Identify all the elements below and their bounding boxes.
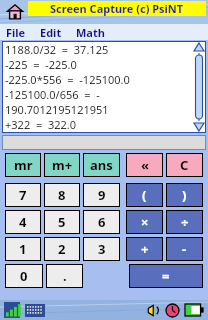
button[interactable]: Edit xyxy=(40,25,62,40)
staticText: 0 xyxy=(20,267,28,285)
staticText: 5 xyxy=(58,213,66,231)
button[interactable]: m+ xyxy=(44,153,80,177)
button[interactable]: . xyxy=(46,264,83,288)
button[interactable]: « xyxy=(126,153,163,177)
staticText: -125100.0/656 = - xyxy=(5,87,100,102)
staticText: File xyxy=(6,25,26,40)
button[interactable]: File xyxy=(6,25,26,40)
button[interactable]: Signal xyxy=(4,302,20,318)
button[interactable]: ( xyxy=(126,183,163,207)
button[interactable]: 8 xyxy=(44,183,80,207)
staticText: × xyxy=(141,213,149,231)
button[interactable]: C xyxy=(166,153,203,177)
staticText: Screen Capture (c) PsiNT xyxy=(50,1,184,16)
staticText: ( xyxy=(142,186,147,204)
staticText: ÷ xyxy=(181,213,189,231)
staticText: mr xyxy=(14,156,33,174)
staticText: - xyxy=(182,240,187,258)
staticText: 1 xyxy=(19,240,27,258)
button[interactable]: ) xyxy=(166,183,203,207)
staticText: . xyxy=(63,267,67,285)
button[interactable]: 2 xyxy=(44,237,80,261)
button[interactable]: 0 xyxy=(5,264,43,288)
button[interactable]: ans xyxy=(83,153,120,177)
staticText: « xyxy=(141,156,149,174)
staticText: ) xyxy=(182,186,187,204)
staticText: -225.0*556 = -125100.0 xyxy=(5,72,130,87)
staticText: +322 = 322.0 xyxy=(5,117,77,132)
staticText: -225 = -225.0 xyxy=(5,57,77,72)
staticText: = xyxy=(162,267,170,285)
button[interactable]: Math xyxy=(76,25,105,40)
button[interactable]: = xyxy=(129,264,203,288)
button[interactable]: Volume xyxy=(145,303,160,318)
button[interactable]: 1 xyxy=(5,237,41,261)
staticText: C xyxy=(180,156,189,174)
staticText: m+ xyxy=(52,156,73,174)
button[interactable] xyxy=(2,135,206,150)
button[interactable]: Keyboard xyxy=(25,304,45,317)
button[interactable]: 7 xyxy=(5,183,41,207)
staticText: ans xyxy=(90,156,113,174)
staticText: 4 xyxy=(19,213,27,231)
staticText: 7 xyxy=(19,186,27,204)
staticText: Math xyxy=(76,25,105,40)
staticText: Edit xyxy=(40,25,62,40)
button[interactable]: 6 xyxy=(83,210,120,234)
button[interactable]: 9 xyxy=(83,183,120,207)
button[interactable]: Home xyxy=(6,3,24,21)
staticText: 190.7012195121951 xyxy=(5,102,109,117)
button[interactable]: mr xyxy=(5,153,41,177)
staticText: + xyxy=(141,240,149,258)
button[interactable]: 4 xyxy=(5,210,41,234)
button[interactable]: Scroll xyxy=(192,41,206,133)
button[interactable]: Battery xyxy=(185,304,204,316)
staticText: 9 xyxy=(98,186,106,204)
button[interactable]: Clock xyxy=(165,303,180,318)
staticText: 8 xyxy=(58,186,66,204)
staticText: 2 xyxy=(58,240,66,258)
staticText: 3 xyxy=(98,240,106,258)
button[interactable]: - xyxy=(166,237,203,261)
staticText: 1188.0/32 = 37.125 xyxy=(5,42,109,57)
button[interactable]: 3 xyxy=(83,237,120,261)
button[interactable]: 5 xyxy=(44,210,80,234)
button[interactable]: ÷ xyxy=(166,210,203,234)
staticText: 6 xyxy=(98,213,106,231)
button[interactable]: × xyxy=(126,210,163,234)
button[interactable]: + xyxy=(126,237,163,261)
